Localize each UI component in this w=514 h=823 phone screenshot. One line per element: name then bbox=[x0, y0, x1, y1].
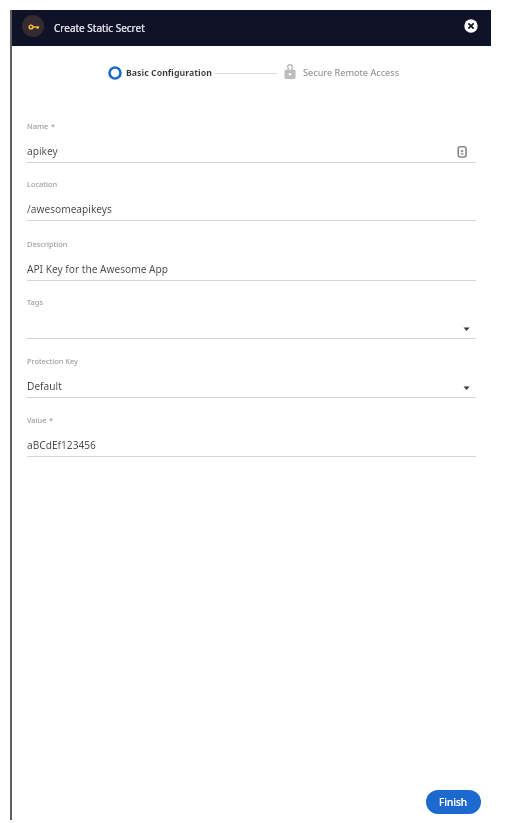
staticText: Create Static Secret bbox=[54, 21, 145, 35]
staticText: API Key for the Awesome App bbox=[27, 262, 168, 276]
button[interactable]: Location bbox=[27, 175, 476, 221]
staticText: Tags bbox=[27, 297, 43, 307]
button[interactable]: Tags bbox=[27, 293, 476, 339]
staticText: Name bbox=[27, 121, 49, 131]
button[interactable]: Value bbox=[27, 411, 476, 457]
staticText: Finish bbox=[439, 795, 468, 809]
staticText: /awesomeapikeys bbox=[27, 202, 112, 216]
button[interactable]: Pick name from directory bbox=[458, 146, 469, 157]
staticText: Location bbox=[27, 179, 58, 189]
button[interactable]: Close bbox=[459, 14, 483, 38]
button[interactable]: Name bbox=[27, 117, 476, 163]
staticText: Protection Key bbox=[27, 356, 78, 366]
button[interactable]: Finish bbox=[426, 790, 481, 814]
staticText: aBCdEf123456 bbox=[27, 438, 96, 452]
staticText: * bbox=[49, 121, 56, 131]
button[interactable]: Description bbox=[27, 235, 476, 281]
button[interactable]: Protection Key bbox=[27, 352, 476, 398]
staticText: Secure Remote Access bbox=[303, 66, 400, 79]
staticText: Basic Configuration bbox=[126, 67, 212, 79]
staticText: Description bbox=[27, 239, 68, 249]
button[interactable]: Basic Configuration bbox=[106, 64, 210, 82]
staticText: Default bbox=[27, 379, 62, 393]
button[interactable]: Secure Remote Access bbox=[283, 62, 400, 82]
staticText: * bbox=[47, 415, 54, 425]
staticText: apikey bbox=[27, 144, 58, 158]
staticText: Value bbox=[27, 415, 47, 425]
